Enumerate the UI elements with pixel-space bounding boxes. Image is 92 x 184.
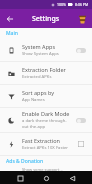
staticText: App Names: [22, 97, 45, 103]
staticText: Show some support ..: [22, 167, 63, 171]
staticText: Fast Extraction: [22, 137, 60, 144]
button[interactable]: Fast Extraction: [0, 133, 92, 155]
staticText: Show System Apps: [22, 51, 59, 57]
button[interactable]: Enable Dark Mode: [75, 114, 87, 126]
staticText: Ads & Donation: [6, 158, 44, 165]
button[interactable]: System Apps: [75, 44, 87, 56]
staticText: System Apps: [22, 43, 56, 50]
button[interactable]: Back: [3, 12, 16, 25]
staticText: Main: [6, 30, 18, 37]
button[interactable]: Extraction Folder: [0, 62, 92, 84]
staticText: 100%: [57, 2, 66, 7]
button[interactable]: Fast Extraction: [75, 138, 87, 150]
staticText: Extracted APKs: [22, 74, 52, 80]
staticText: Sort apps by: [22, 89, 55, 96]
button[interactable]: Recents: [14, 172, 26, 184]
button[interactable]: Donate coffee: [75, 12, 89, 26]
staticText: Extraction Folder: [22, 66, 66, 73]
button[interactable]: Back: [66, 172, 78, 184]
button[interactable]: Home: [40, 172, 52, 184]
staticText: a dark theme through-out the-app: [22, 118, 71, 130]
button[interactable]: Sort apps by: [0, 85, 92, 107]
staticText: Extract APKs 10X Faster: [22, 145, 69, 151]
staticText: Enable Dark Mode: [22, 110, 70, 117]
button[interactable]: System Apps: [0, 39, 92, 61]
button[interactable]: Enable Dark Mode: [0, 108, 92, 132]
staticText: Settings: [32, 14, 60, 24]
button[interactable]: Show some support ..: [0, 167, 92, 171]
staticText: 8:06 PM: [75, 2, 89, 7]
